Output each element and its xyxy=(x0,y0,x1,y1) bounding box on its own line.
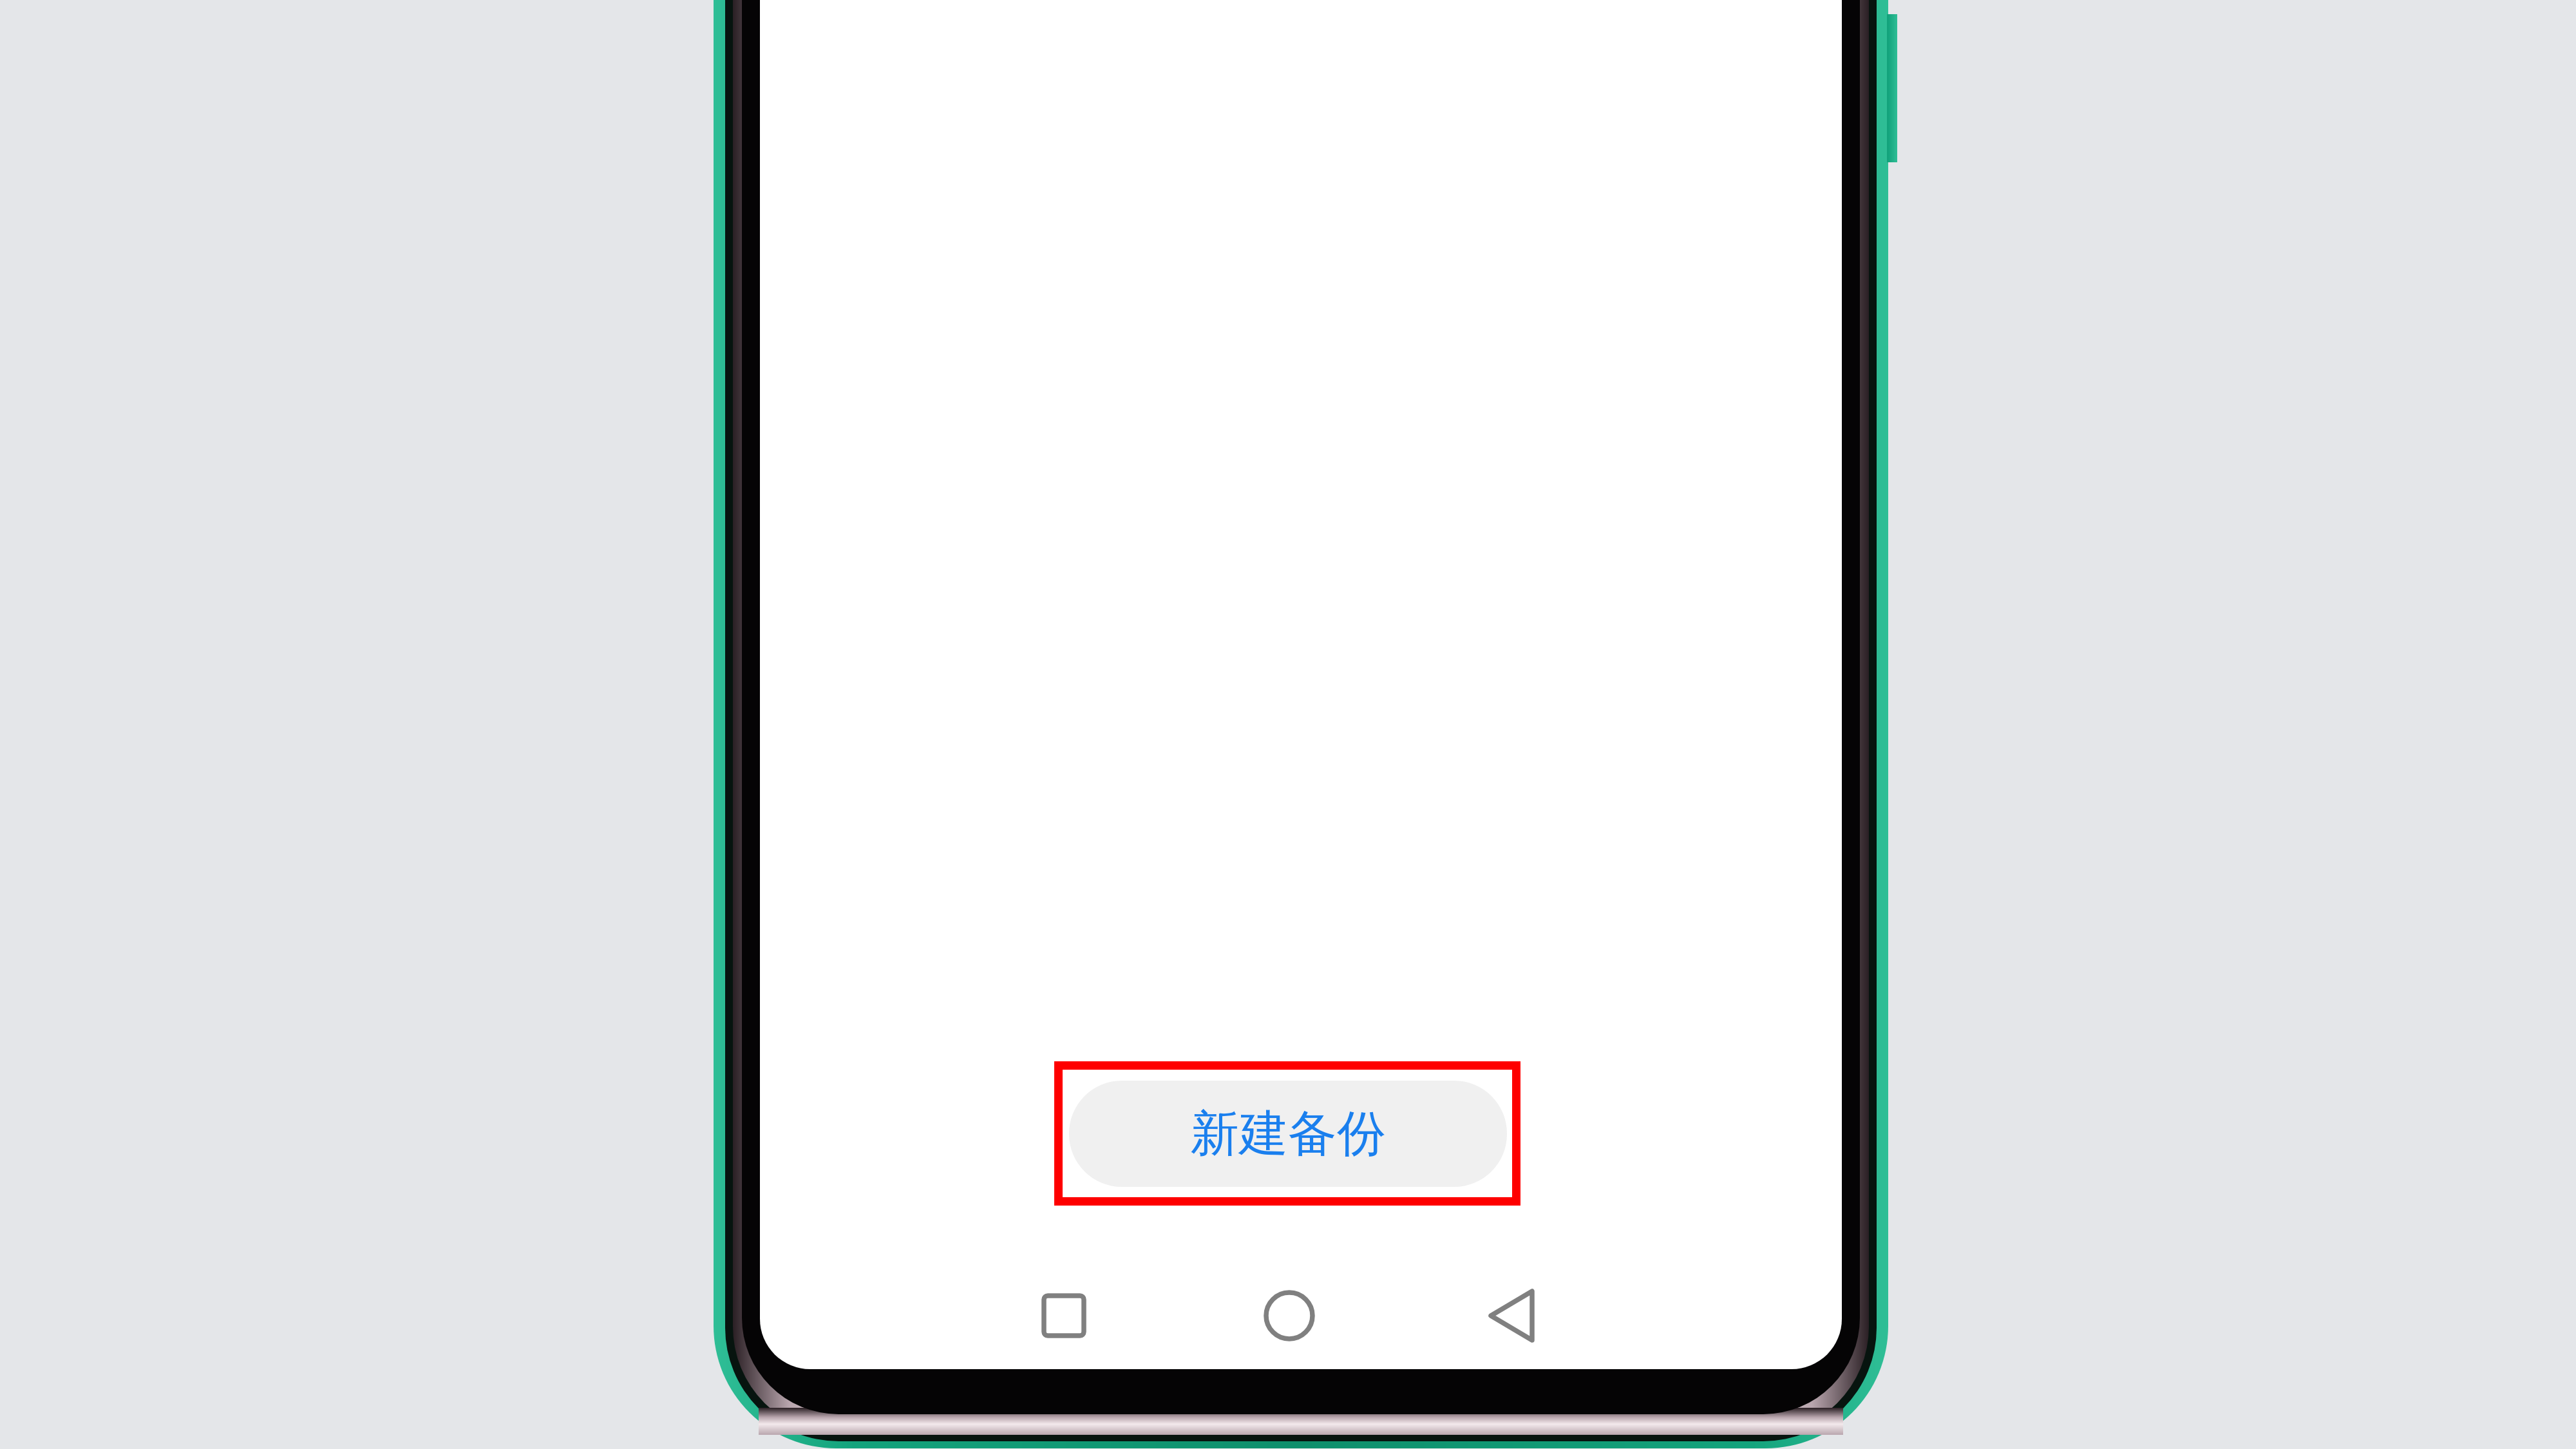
staticText: 新建备份 xyxy=(1190,1103,1386,1165)
button[interactable]: 新建备份 xyxy=(1069,1081,1507,1187)
other: Highlight annotation xyxy=(1054,1061,1520,1206)
